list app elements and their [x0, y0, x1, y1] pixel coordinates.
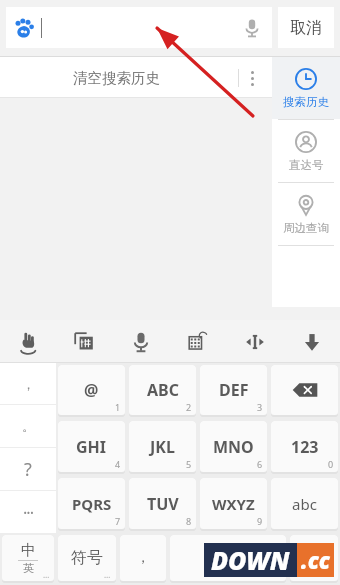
button[interactable]: abc: [271, 478, 338, 529]
staticText: …: [43, 569, 50, 580]
other: Backspace: [269, 363, 340, 419]
button[interactable]: Voice search: [6, 7, 272, 48]
button[interactable]: GHI: [58, 421, 125, 472]
button[interactable]: ，: [0, 363, 56, 404]
staticText: 搜索历史: [283, 95, 329, 109]
button[interactable]: 周边查询: [272, 183, 340, 245]
staticText: 0: [328, 458, 334, 470]
button[interactable]: Handwriting input: [0, 320, 56, 363]
staticText: 取消: [290, 18, 322, 38]
button[interactable]: @: [58, 365, 125, 415]
staticText: 周边查询: [283, 221, 329, 235]
button[interactable]: Hide keyboard: [283, 320, 340, 363]
button[interactable]: ABC: [129, 365, 196, 415]
button[interactable]: [271, 365, 338, 415]
staticText: GHI: [76, 436, 107, 458]
staticText: DEF: [219, 379, 249, 401]
button[interactable]: WXYZ: [200, 478, 267, 529]
staticText: TUV: [147, 493, 179, 515]
staticText: ABC: [147, 379, 179, 401]
button[interactable]: TUV: [129, 478, 196, 529]
staticText: JKL: [150, 436, 175, 458]
staticText: MNO: [213, 436, 254, 458]
button[interactable]: 取消: [278, 7, 334, 48]
staticText: WXYZ: [212, 494, 255, 514]
button[interactable]: DEF: [200, 365, 267, 415]
button[interactable]: MNO: [200, 421, 267, 472]
staticText: 4: [115, 458, 121, 470]
staticText: PQRS: [72, 494, 112, 514]
staticText: 1: [115, 401, 121, 413]
staticText: 123: [291, 436, 319, 458]
staticText: 。: [22, 418, 35, 434]
button[interactable]: [290, 535, 338, 581]
button[interactable]: 清空搜索历史: [73, 57, 160, 98]
staticText: 3: [257, 401, 263, 413]
button[interactable]: 。: [0, 405, 56, 447]
button[interactable]: 搜索历史: [272, 57, 340, 119]
button[interactable]: 直达号: [272, 120, 340, 182]
button[interactable]: ，: [120, 535, 166, 581]
button[interactable]: •••: [0, 491, 56, 533]
staticText: 中: [21, 541, 36, 560]
button[interactable]: Pinyin keyboard: [56, 320, 112, 363]
button[interactable]: Move cursor: [226, 320, 283, 363]
staticText: •••: [23, 506, 34, 518]
staticText: ，: [136, 549, 150, 567]
button[interactable]: Switch keyboard: [169, 320, 226, 363]
staticText: 直达号: [289, 158, 324, 172]
staticText: 清空搜索历史: [73, 69, 160, 87]
button[interactable]: 中: [2, 535, 54, 581]
staticText: 8: [186, 515, 192, 527]
button[interactable]: 123: [271, 421, 338, 472]
staticText: 6: [257, 458, 263, 470]
staticText: DOWN: [211, 543, 290, 577]
staticText: 9: [257, 515, 263, 527]
button[interactable]: PQRS: [58, 478, 125, 529]
staticText: …: [104, 569, 111, 580]
staticText: 英: [23, 561, 34, 575]
button[interactable]: Voice search: [236, 12, 268, 44]
staticText: 2: [186, 401, 192, 413]
button[interactable]: ?: [0, 448, 56, 490]
button[interactable]: More options: [230, 57, 272, 98]
staticText: 5: [186, 458, 192, 470]
button[interactable]: Voice input: [112, 320, 169, 363]
staticText: ?: [24, 457, 32, 482]
staticText: 符号: [71, 548, 103, 568]
button[interactable]: 符号: [58, 535, 116, 581]
staticText: @: [84, 379, 99, 401]
staticText: ，: [22, 376, 35, 392]
staticText: .cc: [301, 545, 330, 575]
button[interactable]: [170, 535, 286, 581]
staticText: abc: [292, 494, 317, 514]
staticText: 7: [115, 515, 121, 527]
button[interactable]: JKL: [129, 421, 196, 472]
